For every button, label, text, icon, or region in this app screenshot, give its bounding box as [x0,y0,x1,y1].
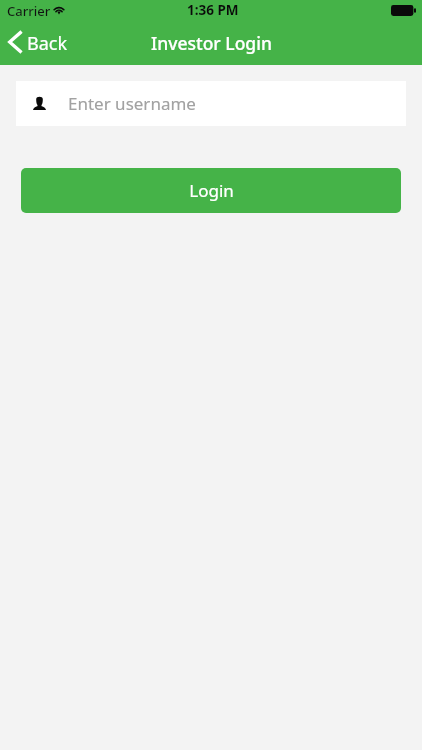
button[interactable]: Back [0,21,78,65]
staticText: Login [189,179,234,202]
staticText: Investor Login [151,31,272,55]
staticText: Back [27,31,68,56]
button[interactable]: Login [21,168,401,213]
staticText: Enter username [68,92,196,115]
staticText: 1:36 PM [187,1,239,19]
button[interactable]: Enter username [16,81,406,126]
staticText: Carrier [7,2,51,20]
